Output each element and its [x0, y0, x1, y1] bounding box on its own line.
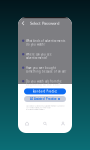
button[interactable]: Back	[19, 18, 28, 28]
staticText: What kinds of advertisements do you watc…	[26, 39, 65, 46]
staticText: Standard Practice	[32, 90, 57, 93]
staticText: Do you watch ads from the beginning to t…	[26, 80, 62, 87]
button[interactable]: Standard Practice	[24, 88, 66, 94]
staticText: Select Password	[30, 21, 60, 26]
button[interactable]: AI Assisted Practice	[24, 96, 66, 102]
button[interactable]: Home	[18, 119, 36, 133]
staticText: AI assisted practice is only available f…	[26, 105, 64, 110]
staticText: Where can you see advertisements?	[26, 53, 52, 60]
staticText: AI Assisted Practice	[30, 97, 57, 101]
staticText: Have you ever bought something because o…	[26, 66, 66, 73]
button[interactable]: Search	[36, 119, 54, 133]
button[interactable]: Profile	[54, 119, 72, 133]
